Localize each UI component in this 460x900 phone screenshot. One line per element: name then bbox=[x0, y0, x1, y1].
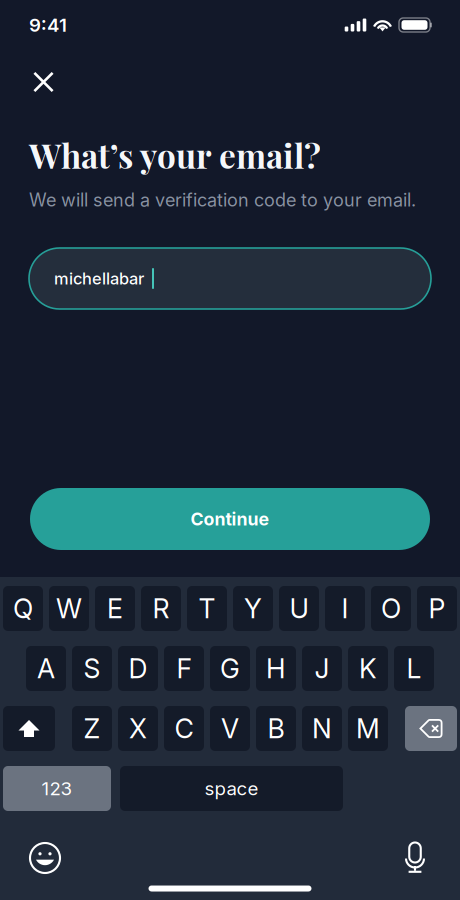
staticText: J bbox=[314, 652, 329, 685]
button[interactable]: K bbox=[348, 646, 388, 691]
button[interactable]: T bbox=[187, 586, 227, 631]
staticText: S bbox=[83, 652, 100, 685]
button[interactable]: O bbox=[371, 586, 411, 631]
button[interactable]: F bbox=[164, 646, 204, 691]
staticText: M bbox=[356, 712, 380, 745]
button[interactable]: Emoji bbox=[24, 840, 66, 876]
staticText: V bbox=[221, 712, 239, 745]
staticText: Y bbox=[244, 592, 262, 625]
staticText: T bbox=[198, 592, 215, 625]
button[interactable]: Close bbox=[21, 60, 65, 104]
button[interactable]: space bbox=[120, 766, 343, 811]
staticText: G bbox=[220, 652, 240, 685]
staticText: space bbox=[204, 777, 258, 800]
button[interactable]: V bbox=[210, 706, 250, 751]
button[interactable]: C bbox=[164, 706, 204, 751]
staticText: F bbox=[176, 652, 191, 685]
staticText: H bbox=[266, 652, 286, 685]
staticText: W bbox=[56, 592, 82, 625]
button[interactable]: I bbox=[325, 586, 365, 631]
staticText: N bbox=[312, 712, 332, 745]
button[interactable]: Q bbox=[3, 586, 43, 631]
button[interactable]: Dictate bbox=[394, 840, 436, 876]
staticText: P bbox=[428, 592, 445, 625]
staticText: I bbox=[341, 592, 348, 625]
staticText: We will send a verification code to your… bbox=[29, 189, 416, 211]
staticText: What’s your email? bbox=[29, 133, 321, 177]
button[interactable]: M bbox=[348, 706, 388, 751]
button[interactable]: A bbox=[26, 646, 66, 691]
button[interactable]: N bbox=[302, 706, 342, 751]
button[interactable]: H bbox=[256, 646, 296, 691]
staticText: Q bbox=[13, 592, 33, 625]
button[interactable]: G bbox=[210, 646, 250, 691]
button[interactable]: L bbox=[394, 646, 434, 691]
button[interactable]: P bbox=[417, 586, 457, 631]
staticText: K bbox=[359, 652, 377, 685]
staticText: C bbox=[174, 712, 193, 745]
button[interactable]: U bbox=[279, 586, 319, 631]
button[interactable]: W bbox=[49, 586, 89, 631]
staticText: O bbox=[381, 592, 401, 625]
button[interactable]: R bbox=[141, 586, 181, 631]
staticText: michellabar bbox=[54, 269, 144, 288]
button[interactable]: S bbox=[72, 646, 112, 691]
staticText: 9:41 bbox=[29, 14, 67, 36]
staticText: Continue bbox=[190, 508, 269, 530]
staticText: A bbox=[37, 652, 55, 685]
button[interactable]: J bbox=[302, 646, 342, 691]
staticText: R bbox=[152, 592, 169, 625]
button[interactable]: Continue bbox=[30, 488, 430, 550]
staticText: U bbox=[289, 592, 308, 625]
button[interactable]: Z bbox=[72, 706, 112, 751]
button[interactable]: Shift bbox=[3, 706, 55, 751]
staticText: B bbox=[267, 712, 284, 745]
button[interactable]: E bbox=[95, 586, 135, 631]
button[interactable]: D bbox=[118, 646, 158, 691]
staticText: E bbox=[107, 592, 123, 625]
button[interactable]: Y bbox=[233, 586, 273, 631]
button[interactable]: 123 bbox=[3, 766, 111, 811]
staticText: X bbox=[129, 712, 147, 745]
staticText: Z bbox=[83, 712, 100, 745]
staticText: 123 bbox=[41, 777, 72, 800]
button[interactable]: X bbox=[118, 706, 158, 751]
staticText: L bbox=[406, 652, 421, 685]
button[interactable]: B bbox=[256, 706, 296, 751]
staticText: D bbox=[128, 652, 147, 685]
button[interactable]: Delete bbox=[405, 706, 457, 751]
